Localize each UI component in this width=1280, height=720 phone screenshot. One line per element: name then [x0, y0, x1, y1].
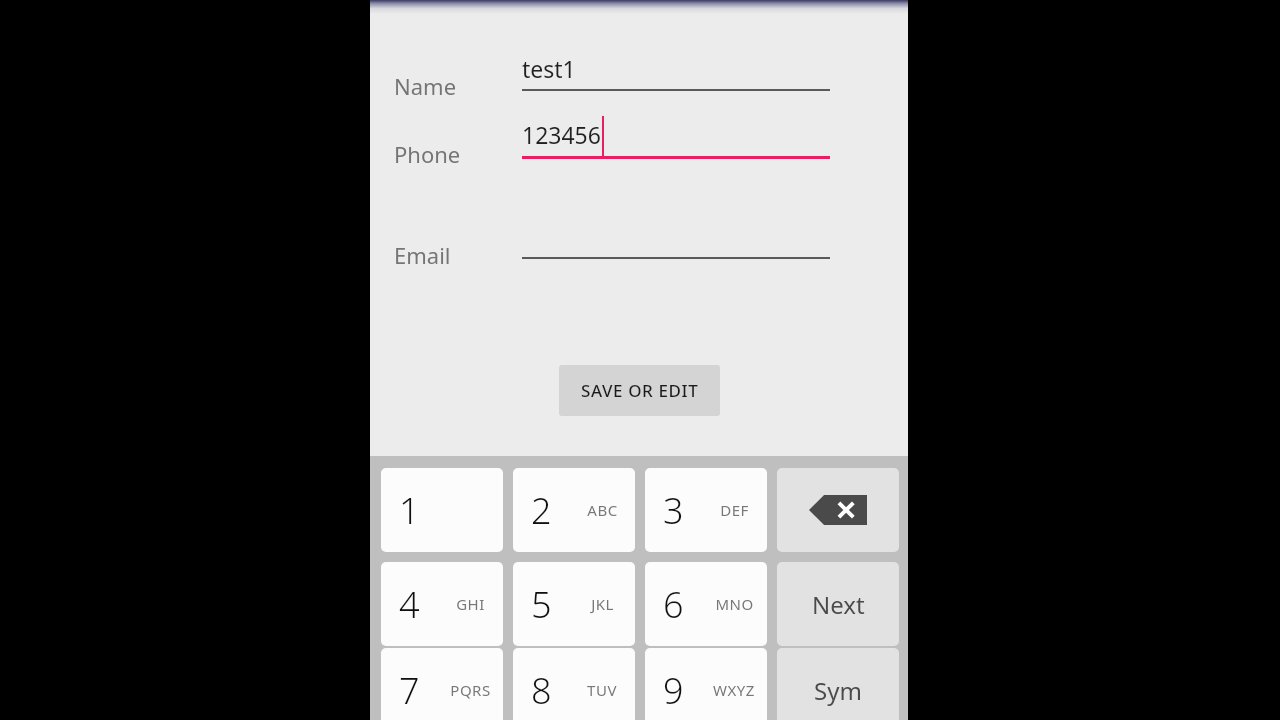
staticText: 6 [663, 580, 684, 629]
staticText: 3 [663, 486, 684, 535]
button[interactable]: Sym [777, 648, 899, 720]
button[interactable]: 7 [381, 648, 503, 720]
button[interactable]: 3 [645, 468, 767, 552]
staticText: test1 [522, 53, 576, 84]
button[interactable]: 8 [513, 648, 635, 720]
staticText: GHI [456, 594, 485, 614]
staticText: MNO [715, 594, 754, 614]
staticText: PQRS [450, 680, 491, 700]
staticText: Next [812, 588, 865, 621]
staticText: 5 [531, 580, 552, 629]
staticText: DEF [720, 500, 749, 520]
staticText: 9 [663, 666, 684, 715]
staticText: ABC [587, 500, 618, 520]
staticText: Phone [394, 139, 461, 169]
button[interactable]: Backspace [777, 468, 899, 552]
staticText: 4 [399, 580, 420, 629]
button[interactable]: 4 [381, 562, 503, 646]
staticText: JKL [591, 594, 614, 614]
staticText: 2 [531, 486, 552, 535]
staticText: Name [394, 71, 457, 101]
staticText: Email [394, 240, 451, 270]
staticText: 7 [399, 666, 420, 715]
staticText: 1 [399, 486, 420, 535]
button[interactable]: 2 [513, 468, 635, 552]
button[interactable]: SAVE OR EDIT [559, 365, 720, 416]
staticText: 123456 [522, 119, 601, 150]
staticText: SAVE OR EDIT [581, 379, 699, 402]
staticText: 8 [531, 666, 552, 715]
staticText: Sym [814, 674, 862, 707]
button[interactable]: 123456 [522, 112, 830, 164]
button[interactable]: 5 [513, 562, 635, 646]
button[interactable]: 1 [381, 468, 503, 552]
staticText: WXYZ [713, 680, 755, 700]
button[interactable] [522, 214, 830, 265]
button[interactable]: 6 [645, 562, 767, 646]
staticText: TUV [587, 680, 617, 700]
button[interactable]: 9 [645, 648, 767, 720]
button[interactable]: Next [777, 562, 899, 646]
button[interactable]: test1 [522, 46, 830, 97]
